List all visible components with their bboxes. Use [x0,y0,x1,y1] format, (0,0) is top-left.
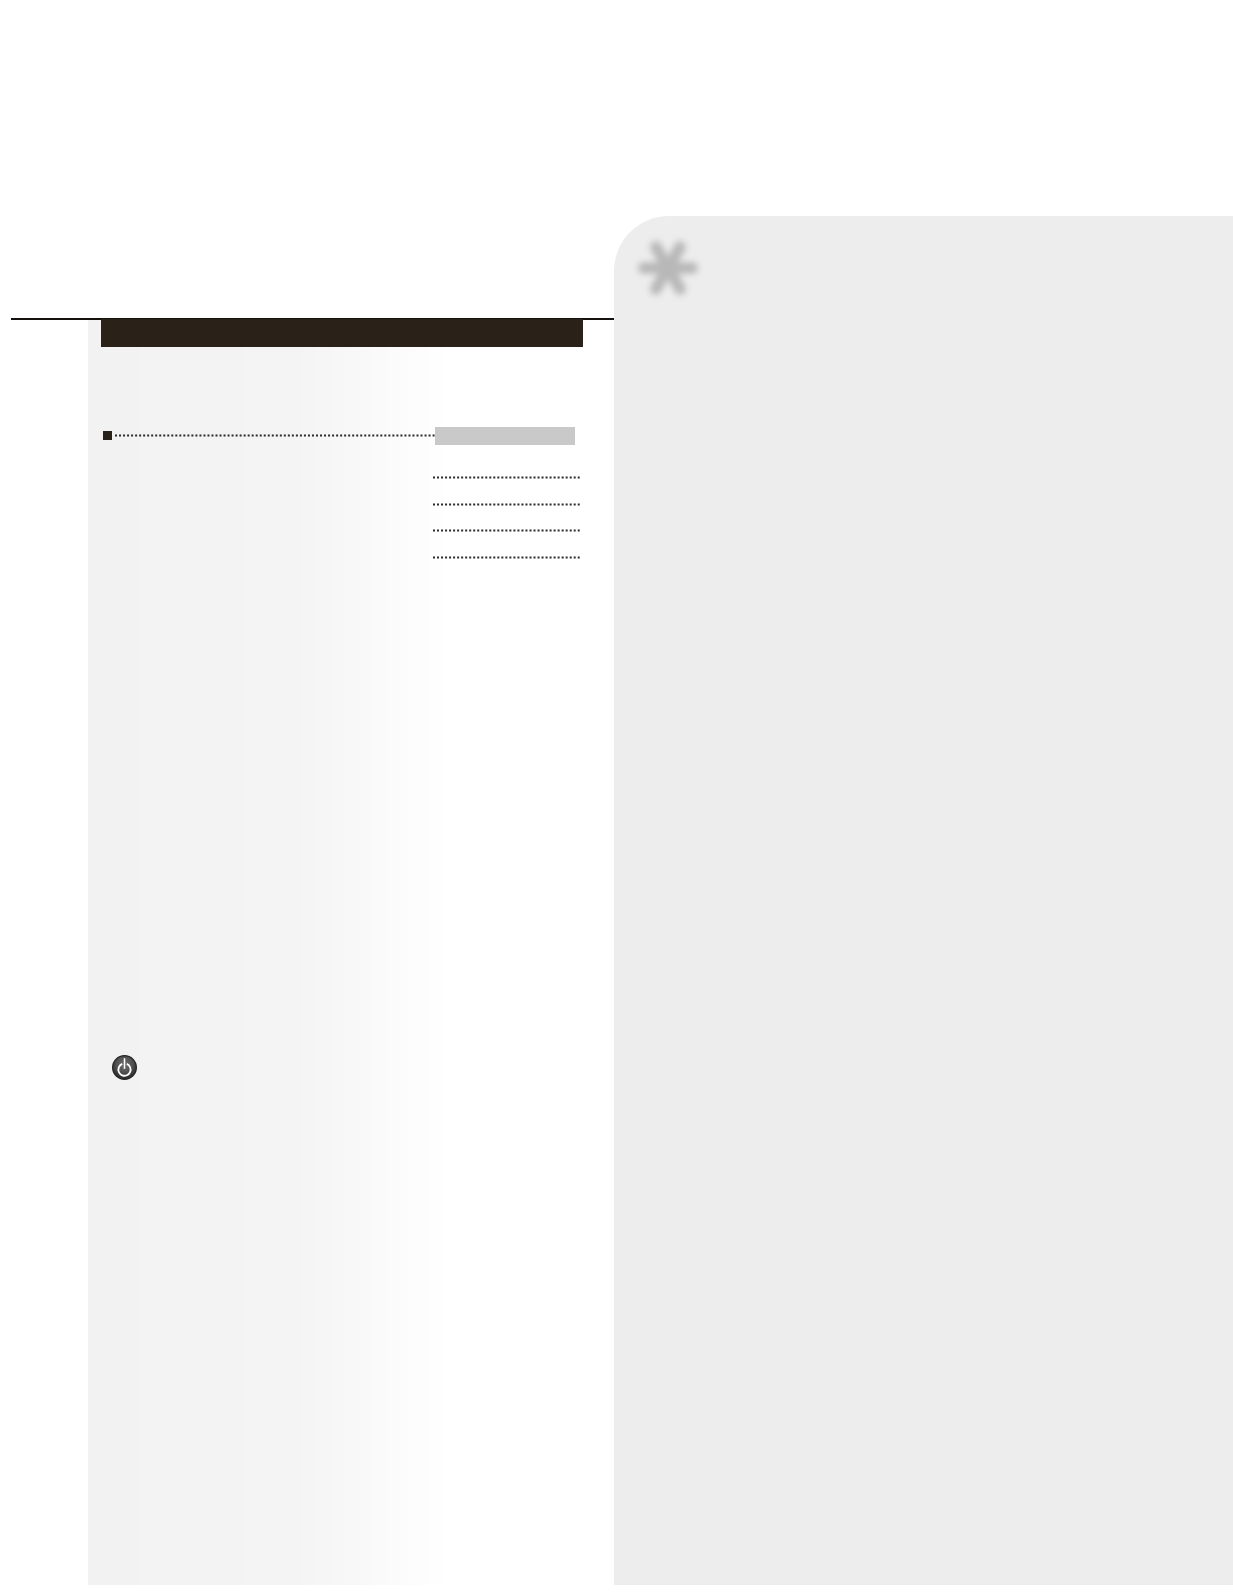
button[interactable]: Snowflake [633,233,703,303]
button[interactable]: Power [112,1055,137,1080]
